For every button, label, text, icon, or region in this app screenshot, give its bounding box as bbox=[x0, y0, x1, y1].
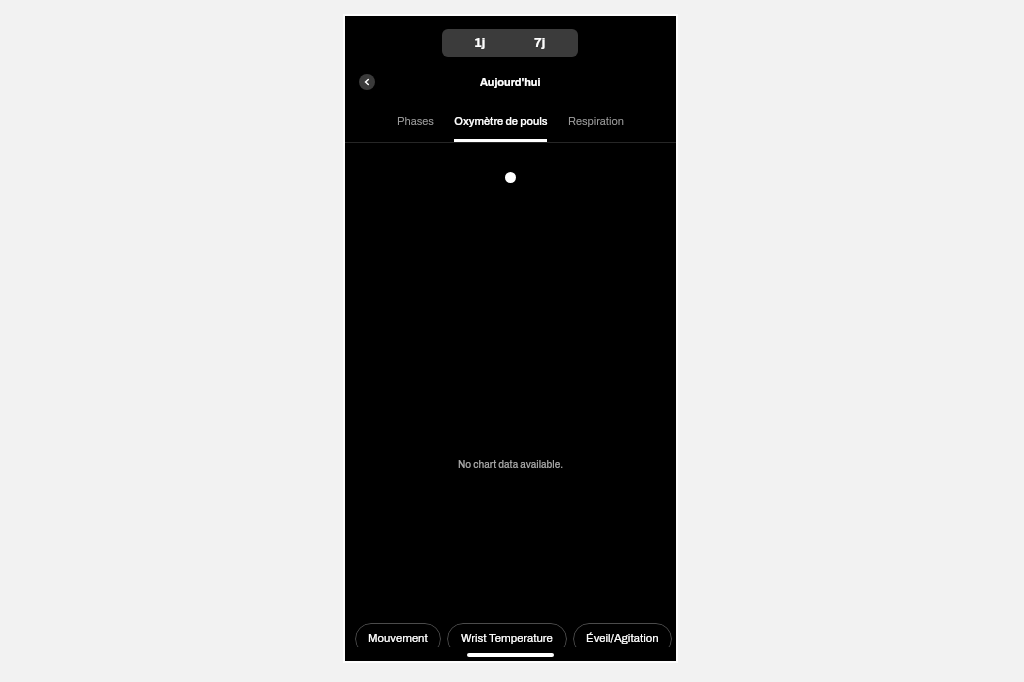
staticText: 7j bbox=[534, 36, 546, 50]
button[interactable]: Éveil/Agitation bbox=[573, 623, 672, 647]
staticText: No chart data available. bbox=[458, 459, 564, 470]
button[interactable]: Respiration bbox=[563, 108, 629, 134]
staticText: Oxymètre de pouls bbox=[454, 115, 548, 127]
staticText: Wrist Temperature bbox=[461, 632, 553, 644]
staticText: Phases bbox=[397, 115, 434, 127]
staticText: Éveil/Agitation bbox=[586, 632, 659, 644]
button[interactable]: Oxymètre de pouls bbox=[449, 108, 553, 134]
staticText: 1j bbox=[474, 36, 486, 50]
staticText: Respiration bbox=[568, 115, 624, 127]
button[interactable]: 1j bbox=[442, 29, 510, 57]
button[interactable]: Phases bbox=[392, 108, 438, 134]
button[interactable]: Wrist Temperature bbox=[447, 623, 567, 647]
button[interactable]: Back bbox=[359, 74, 375, 90]
staticText: Mouvement bbox=[368, 632, 428, 644]
button[interactable]: 7j bbox=[510, 29, 578, 57]
button[interactable]: Mouvement bbox=[355, 623, 441, 647]
staticText: Aujourd'hui bbox=[480, 76, 541, 88]
